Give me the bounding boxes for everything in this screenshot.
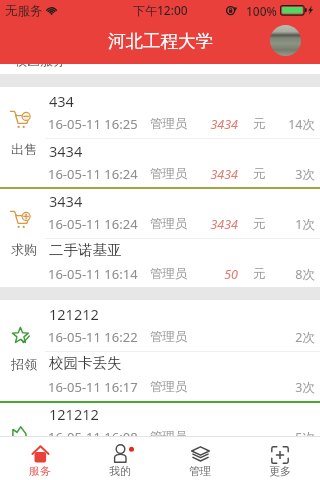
button[interactable]: 个人中心	[270, 25, 301, 56]
staticText: 16-05-11 16:08	[48, 428, 138, 446]
staticText: 100%	[246, 3, 277, 19]
button[interactable]: 3434	[0, 187, 320, 237]
staticText: 50	[187, 266, 238, 283]
other: 寻物	[12, 426, 28, 437]
button[interactable]: 121212	[0, 400, 320, 450]
other: 求购	[10, 210, 30, 228]
staticText: 元	[253, 166, 266, 182]
staticText: 14次	[274, 116, 315, 133]
staticText: 434	[49, 91, 74, 111]
staticText: 元	[253, 216, 266, 232]
staticText: 16-05-11 16:14	[48, 265, 138, 283]
staticText: 16-05-11 16:24	[48, 215, 138, 233]
staticText: 121212	[49, 404, 99, 424]
other: 出售	[10, 110, 30, 128]
staticText: 121212	[49, 304, 99, 324]
other: 招领	[12, 327, 30, 345]
staticText: 服务	[0, 464, 80, 478]
staticText: 元	[253, 116, 266, 132]
staticText: 管理员	[150, 266, 188, 282]
button[interactable]: 3434	[0, 137, 320, 187]
staticText: 无服务	[5, 3, 43, 19]
staticText: 更多	[240, 464, 320, 478]
staticText: 5次	[274, 429, 315, 446]
staticText: 管理员	[150, 216, 188, 232]
staticText: 管理员	[150, 379, 188, 395]
staticText: 求购	[0, 241, 48, 257]
button[interactable]: 二手诺基亚	[0, 237, 320, 287]
staticText: 河北工程大学	[108, 30, 213, 52]
staticText: 校园服务	[14, 52, 66, 68]
staticText: 16-05-11 16:17	[48, 378, 138, 396]
staticText: 16-05-11 16:24	[48, 165, 138, 183]
button[interactable]: 管理	[160, 436, 240, 480]
button[interactable]: 校园卡丢失	[0, 350, 320, 400]
staticText: 管理员	[150, 329, 188, 345]
staticText: 3次	[274, 379, 315, 396]
staticText: 8次	[274, 266, 315, 283]
button[interactable]: 434	[0, 87, 320, 137]
staticText: 出售	[0, 141, 48, 157]
staticText: 3434	[187, 216, 238, 233]
staticText: 招领	[0, 356, 48, 372]
staticText: 管理	[160, 464, 240, 478]
button[interactable]: 我的	[80, 436, 160, 480]
staticText: 16-05-11 16:22	[48, 328, 138, 346]
button[interactable]: 服务	[0, 436, 80, 480]
staticText: 3434	[187, 166, 238, 183]
staticText: 3434	[187, 116, 238, 133]
staticText: 3434	[49, 141, 83, 161]
staticText: 2次	[274, 329, 315, 346]
staticText: 3434	[49, 191, 83, 211]
staticText: 管理员	[150, 166, 188, 182]
staticText: 二手诺基亚	[49, 241, 122, 259]
staticText: 元	[253, 266, 266, 282]
staticText: 管理员	[150, 116, 188, 132]
staticText: 校园卡丢失	[49, 354, 122, 372]
staticText: 1次	[274, 216, 315, 233]
button[interactable]: 121212	[0, 300, 320, 350]
button[interactable]: 更多	[240, 436, 320, 480]
staticText: 3次	[274, 166, 315, 183]
staticText: 16-05-11 16:25	[48, 115, 138, 133]
staticText: 管理员	[150, 429, 188, 445]
staticText: 我的	[80, 464, 160, 478]
staticText: 下午12:00	[133, 2, 188, 18]
